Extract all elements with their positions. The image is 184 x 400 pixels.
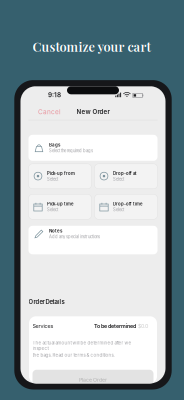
button[interactable]: Notes [28, 226, 157, 254]
staticText: Drop-off at [113, 171, 137, 176]
staticText: Add any special instructions [49, 234, 100, 239]
staticText: the bags. Read our terms & conditions. [32, 352, 114, 358]
staticText: Select [113, 207, 124, 212]
staticText: Customize your cart [32, 38, 151, 55]
button[interactable]: Cancel [33, 105, 66, 119]
button[interactable]: Pick-up time [28, 194, 91, 219]
button[interactable]: Pick-up from [28, 164, 91, 189]
staticText: 9:18 [48, 91, 61, 99]
staticText: Place Order [79, 377, 107, 383]
staticText: New Order [76, 108, 109, 115]
button[interactable]: Drop-off time [94, 194, 157, 219]
button[interactable]: Drop-off at [94, 164, 157, 189]
staticText: Order Details [28, 298, 64, 305]
staticText: To be determined [94, 323, 136, 329]
staticText: Select [47, 207, 58, 212]
staticText: Drop-off time [113, 201, 143, 207]
staticText: Pick-up from [47, 171, 75, 176]
staticText: Services [32, 323, 53, 329]
staticText: Select [113, 177, 124, 182]
staticText: Notes [49, 228, 62, 234]
staticText: Pick-up time [47, 201, 74, 207]
staticText: Cancel [38, 108, 61, 116]
staticText: Bags [49, 142, 60, 148]
staticText: Select the required bags [49, 148, 93, 153]
staticText: $0.0 [136, 323, 148, 329]
staticText: Select [47, 177, 58, 182]
staticText: The actual amount will be determined aft… [32, 340, 131, 351]
button[interactable]: Place Order [32, 370, 153, 390]
button[interactable]: Bags [28, 135, 157, 161]
